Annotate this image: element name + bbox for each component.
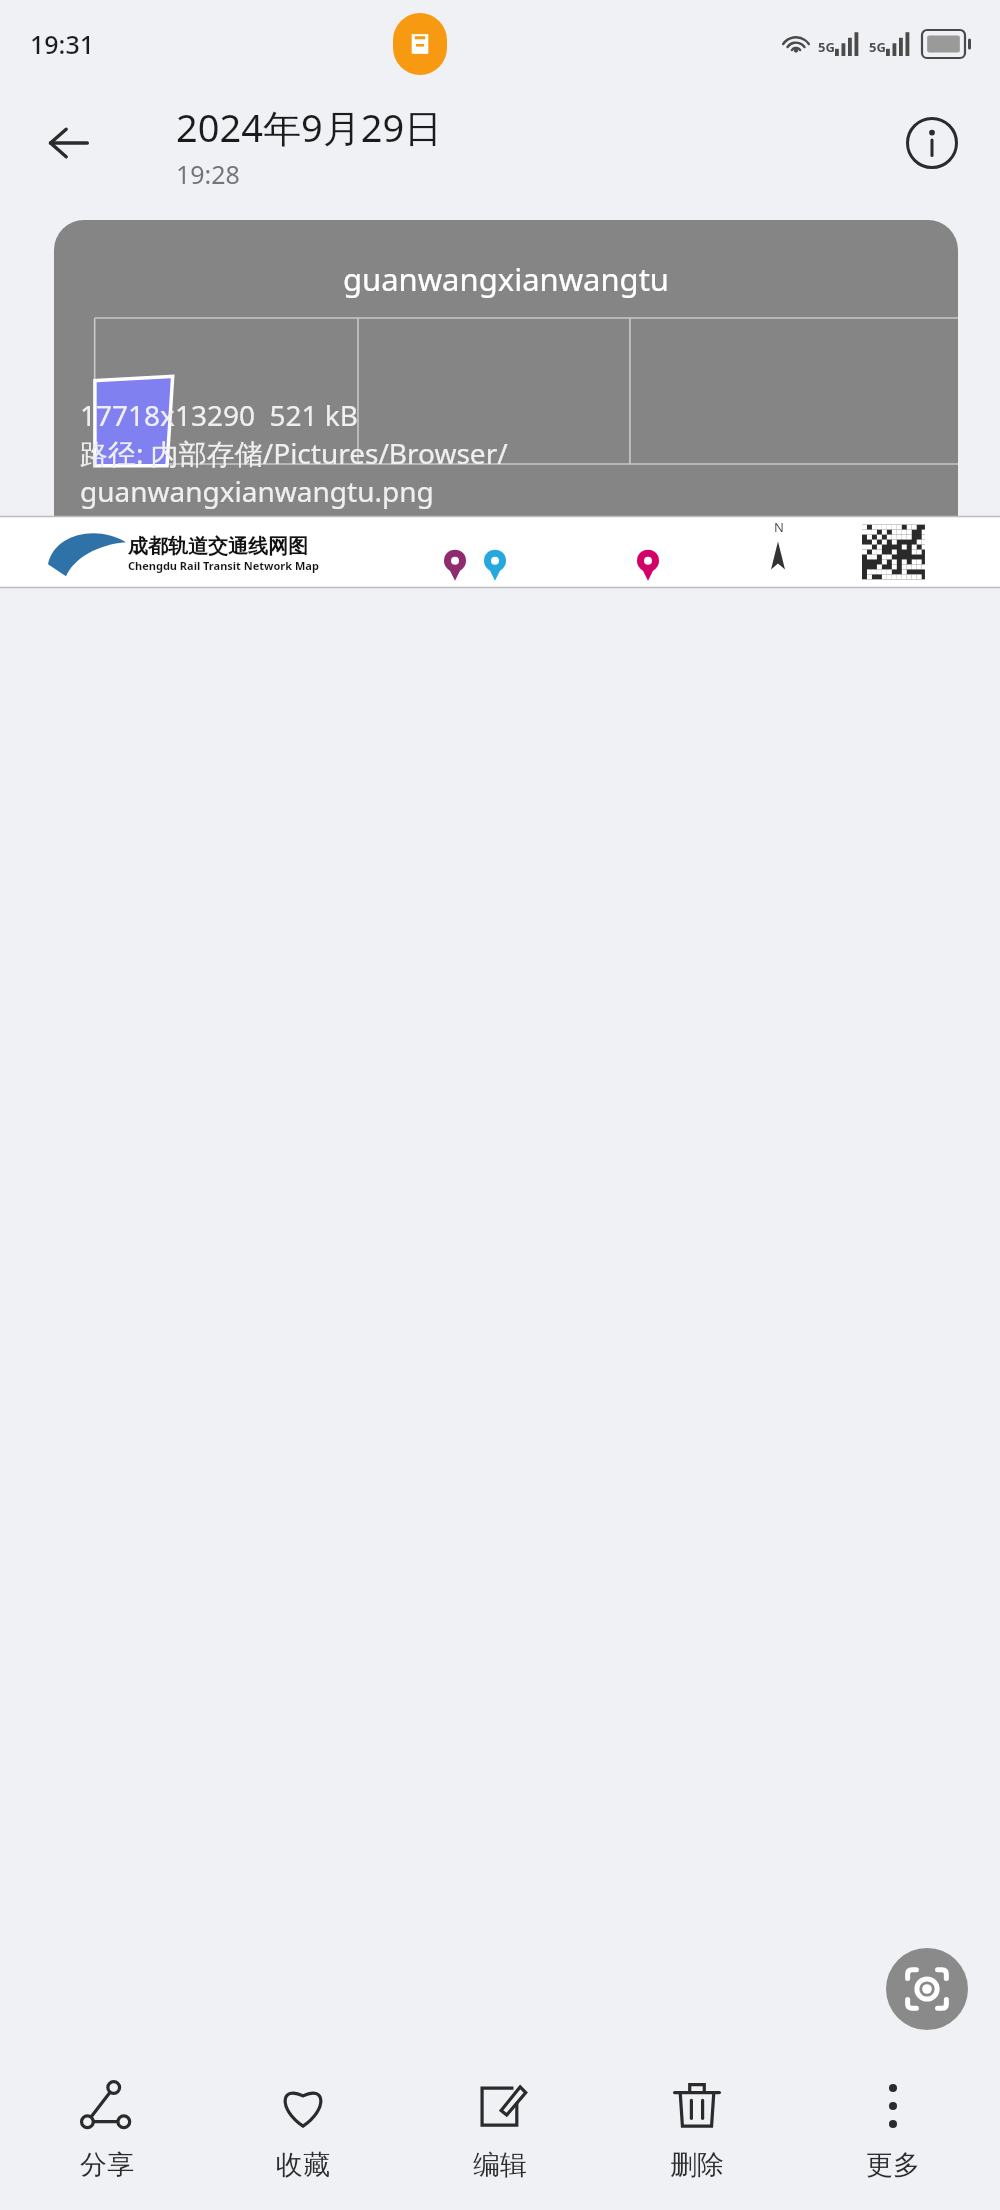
staticText: 19:28	[176, 157, 240, 191]
staticText: 收藏	[276, 2148, 330, 2182]
button[interactable]: Back	[32, 107, 104, 179]
staticText: 路径: 内部存储/Pictures/Browser/	[80, 434, 508, 472]
button[interactable]: 删除	[607, 2050, 787, 2210]
staticText: N	[774, 518, 784, 536]
staticText: 成都轨道交通线网图	[128, 534, 308, 559]
staticText: 19:31	[30, 27, 95, 61]
staticText: guanwangxianwangtu	[54, 258, 958, 300]
staticText: 更多	[866, 2148, 920, 2182]
staticText: 5G	[869, 38, 886, 56]
staticText: guanwangxianwangtu.png	[80, 472, 434, 510]
button[interactable]: 编辑	[410, 2050, 590, 2210]
button[interactable]: Info	[894, 105, 970, 181]
staticText: 分享	[80, 2148, 134, 2182]
button[interactable]: 收藏	[213, 2050, 393, 2210]
button[interactable]: Scan image	[886, 1948, 968, 2030]
button[interactable]: 分享	[17, 2050, 197, 2210]
button[interactable]: guanwangxianwangtu	[54, 220, 958, 516]
staticText: 删除	[670, 2148, 724, 2182]
staticText: 2024年9月29日	[176, 101, 443, 153]
staticText: 编辑	[473, 2148, 527, 2182]
staticText: 5G	[818, 38, 835, 56]
staticText: Chengdu Rail Transit Network Map	[128, 558, 319, 573]
staticText: 17718x13290 521 kB	[80, 396, 359, 434]
button[interactable]: 更多	[803, 2050, 983, 2210]
